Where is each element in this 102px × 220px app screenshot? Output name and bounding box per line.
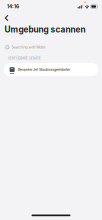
staticText: 14:16 <box>7 4 19 9</box>
button[interactable]: Bespoke Jet Staubsaugerroboter <box>4 63 98 76</box>
staticText: Umgebung scannen <box>4 24 85 34</box>
staticText: VERFÜGBARE GERÄTE <box>8 56 41 60</box>
button[interactable]: Back <box>0 13 12 23</box>
staticText: Searching with Mobil <box>12 45 46 49</box>
staticText: Bespoke Jet Staubsaugerroboter <box>18 67 70 72</box>
